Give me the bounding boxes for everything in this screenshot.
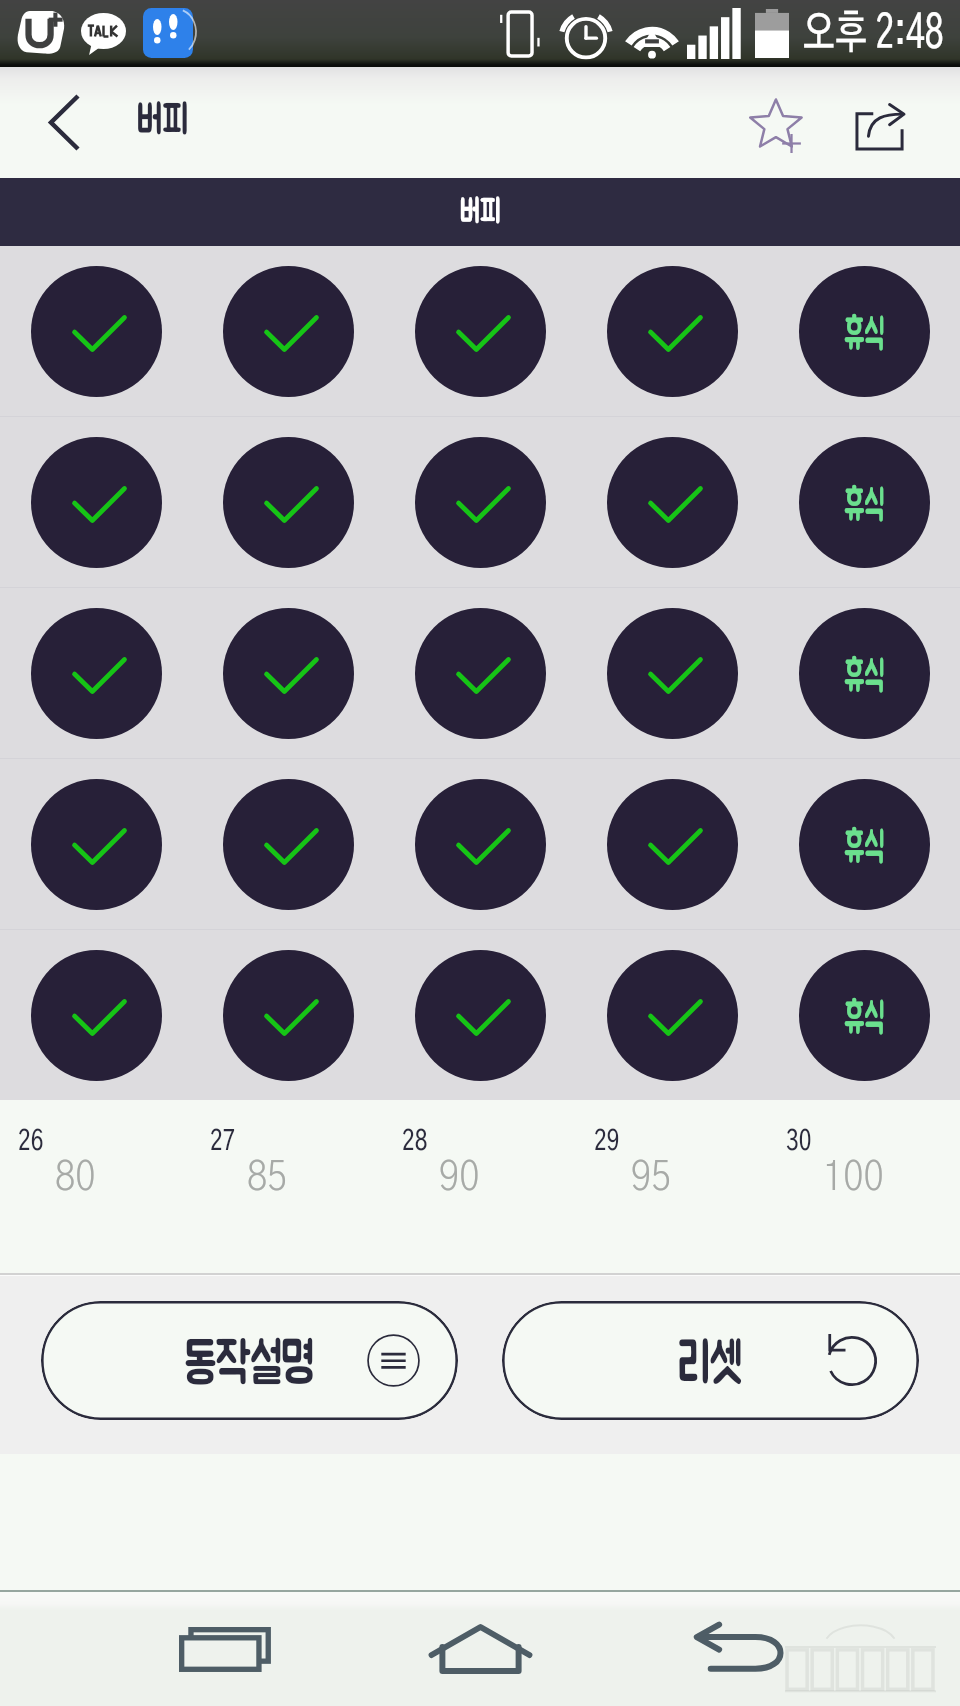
staticText: 85 bbox=[247, 1156, 287, 1198]
button[interactable] bbox=[0, 588, 192, 758]
staticText: 동작설명 bbox=[185, 1336, 314, 1393]
button[interactable] bbox=[576, 246, 768, 416]
staticText: 95 bbox=[631, 1156, 671, 1198]
staticText: 28 bbox=[402, 1128, 428, 1156]
button[interactable]: 휴식 bbox=[768, 417, 960, 587]
button[interactable] bbox=[576, 588, 768, 758]
button[interactable] bbox=[576, 759, 768, 929]
button[interactable]: 휴식 bbox=[768, 246, 960, 416]
staticText: 30 bbox=[786, 1128, 812, 1156]
button[interactable]: Add to favorites bbox=[724, 67, 832, 178]
button[interactable]: 휴식 bbox=[768, 930, 960, 1100]
button[interactable]: 동작설명 bbox=[41, 1301, 458, 1420]
staticText: 29 bbox=[594, 1128, 620, 1156]
button[interactable]: Back bbox=[0, 67, 128, 178]
button[interactable]: 리셋 bbox=[502, 1301, 919, 1420]
staticText: 휴식 bbox=[844, 827, 885, 869]
staticText: 휴식 bbox=[844, 485, 885, 527]
staticText: 오후 2:48 bbox=[803, 11, 943, 57]
staticText: 버피 bbox=[459, 196, 501, 229]
staticText: 리셋 bbox=[678, 1336, 744, 1393]
staticText: 80 bbox=[55, 1156, 95, 1198]
button[interactable] bbox=[192, 246, 384, 416]
button[interactable] bbox=[576, 417, 768, 587]
staticText: 휴식 bbox=[844, 998, 885, 1040]
button[interactable]: 휴식 bbox=[768, 759, 960, 929]
staticText: 26 bbox=[18, 1128, 44, 1156]
button[interactable] bbox=[0, 759, 192, 929]
button[interactable]: 휴식 bbox=[768, 588, 960, 758]
button[interactable] bbox=[0, 246, 192, 416]
staticText: 휴식 bbox=[844, 314, 885, 356]
button[interactable] bbox=[576, 930, 768, 1100]
button[interactable] bbox=[384, 588, 576, 758]
staticText: 휴식 bbox=[844, 656, 885, 698]
button[interactable] bbox=[192, 930, 384, 1100]
staticText: 버피 bbox=[136, 100, 188, 141]
button[interactable]: Share bbox=[828, 67, 932, 178]
button[interactable] bbox=[192, 759, 384, 929]
button[interactable] bbox=[0, 417, 192, 587]
button[interactable]: Back bbox=[675, 1592, 805, 1706]
button[interactable] bbox=[192, 588, 384, 758]
button[interactable] bbox=[0, 930, 192, 1100]
button[interactable] bbox=[384, 930, 576, 1100]
button[interactable] bbox=[192, 417, 384, 587]
button[interactable] bbox=[384, 759, 576, 929]
staticText: 27 bbox=[210, 1128, 236, 1156]
staticText: 90 bbox=[439, 1156, 479, 1198]
staticText: 100 bbox=[823, 1156, 884, 1198]
button[interactable] bbox=[384, 246, 576, 416]
button[interactable]: Recents bbox=[160, 1592, 290, 1706]
button[interactable] bbox=[384, 417, 576, 587]
button[interactable]: Home bbox=[415, 1592, 545, 1706]
